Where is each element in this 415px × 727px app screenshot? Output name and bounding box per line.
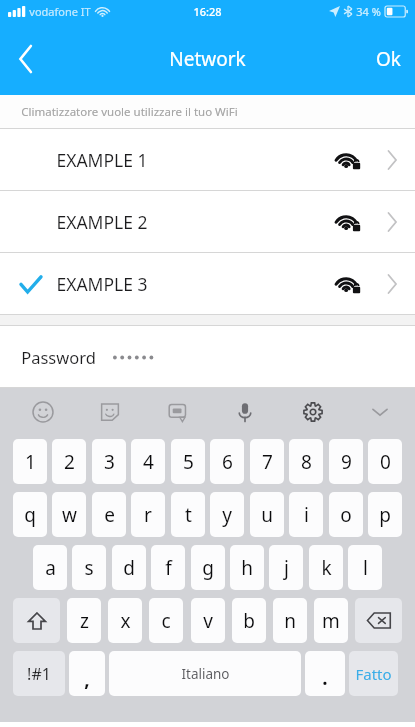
staticText: h xyxy=(241,555,253,581)
button[interactable]: k xyxy=(309,545,343,590)
staticText: e xyxy=(104,502,115,528)
staticText: 7 xyxy=(262,449,273,475)
button[interactable]: , xyxy=(69,651,105,696)
button[interactable]: z xyxy=(67,598,101,643)
button[interactable]: 8 xyxy=(289,439,323,484)
button[interactable]: o xyxy=(329,492,363,537)
button[interactable]: l xyxy=(348,545,382,590)
staticText: z xyxy=(80,608,89,634)
button[interactable]: Back xyxy=(0,22,52,95)
staticText: !#1 xyxy=(27,663,51,685)
button[interactable]: y xyxy=(210,492,244,537)
staticText: k xyxy=(321,555,332,581)
staticText: o xyxy=(340,502,352,528)
staticText: l xyxy=(363,555,368,581)
button[interactable]: Keyboard settings xyxy=(296,395,330,429)
staticText: Italiano xyxy=(181,665,230,683)
button[interactable]: j xyxy=(269,545,303,590)
staticText: 0 xyxy=(380,449,391,475)
staticText: n xyxy=(284,608,296,634)
button[interactable]: x xyxy=(108,598,142,643)
staticText: w xyxy=(62,502,77,528)
button[interactable]: GIF xyxy=(161,395,195,429)
staticText: b xyxy=(243,608,255,634)
staticText: m xyxy=(322,608,340,634)
button[interactable]: 9 xyxy=(329,439,363,484)
staticText: Ok xyxy=(376,46,401,72)
button[interactable]: Voice input xyxy=(228,395,262,429)
button[interactable]: r xyxy=(131,492,165,537)
staticText: q xyxy=(24,502,36,528)
button[interactable]: Hide keyboard xyxy=(363,395,397,429)
button[interactable]: !#1 xyxy=(13,651,65,696)
staticText: 8 xyxy=(301,449,312,475)
staticText: s xyxy=(84,555,94,581)
button[interactable]: 2 xyxy=(52,439,86,484)
button[interactable]: q xyxy=(13,492,47,537)
staticText: EXAMPLE 1 xyxy=(56,148,148,172)
staticText: vodafone IT xyxy=(29,4,91,19)
button[interactable]: Emoji xyxy=(26,395,60,429)
button[interactable]: 3 xyxy=(92,439,126,484)
staticText: j xyxy=(284,555,289,581)
staticText: 1 xyxy=(25,449,36,475)
button[interactable]: EXAMPLE 3 xyxy=(0,253,415,314)
button[interactable]: 7 xyxy=(250,439,284,484)
button[interactable]: 4 xyxy=(131,439,165,484)
staticText: r xyxy=(144,502,152,528)
button[interactable]: Shift xyxy=(13,598,60,643)
button[interactable]: EXAMPLE 2 xyxy=(0,191,415,252)
staticText: 6 xyxy=(222,449,233,475)
staticText: 2 xyxy=(64,449,75,475)
staticText: 4 xyxy=(143,449,154,475)
button[interactable]: g xyxy=(191,545,225,590)
button[interactable]: . xyxy=(305,651,345,696)
staticText: d xyxy=(123,555,135,581)
staticText: a xyxy=(45,555,56,581)
button[interactable]: m xyxy=(314,598,348,643)
button[interactable]: i xyxy=(289,492,323,537)
button[interactable]: a xyxy=(33,545,67,590)
staticText: u xyxy=(261,502,273,528)
button[interactable]: f xyxy=(151,545,185,590)
button[interactable]: Ok xyxy=(376,22,401,95)
staticText: Fatto xyxy=(355,664,392,684)
button[interactable]: Stickers xyxy=(93,395,127,429)
button[interactable]: e xyxy=(92,492,126,537)
button[interactable]: Fatto xyxy=(349,651,398,696)
button[interactable]: p xyxy=(368,492,402,537)
button[interactable]: c xyxy=(149,598,183,643)
staticText: v xyxy=(203,608,213,634)
button[interactable]: n xyxy=(273,598,307,643)
button[interactable]: 0 xyxy=(368,439,402,484)
button[interactable]: 5 xyxy=(171,439,205,484)
staticText: 3 xyxy=(104,449,115,475)
staticText: i xyxy=(304,502,309,528)
button[interactable]: d xyxy=(112,545,146,590)
button[interactable]: Password xyxy=(0,326,415,387)
staticText: x xyxy=(120,608,131,634)
staticText: c xyxy=(161,608,171,634)
staticText: , xyxy=(84,666,90,692)
button[interactable]: Italiano xyxy=(109,651,301,696)
staticText: Password xyxy=(21,346,96,368)
button[interactable]: h xyxy=(230,545,264,590)
button[interactable]: s xyxy=(72,545,106,590)
staticText: 5 xyxy=(183,449,194,475)
button[interactable]: 1 xyxy=(13,439,47,484)
button[interactable]: w xyxy=(52,492,86,537)
button[interactable]: v xyxy=(191,598,225,643)
staticText: 9 xyxy=(341,449,352,475)
staticText: f xyxy=(165,555,172,581)
button[interactable]: 6 xyxy=(210,439,244,484)
button[interactable]: Backspace xyxy=(355,598,402,643)
staticText: 16:28 xyxy=(193,4,222,19)
staticText: . xyxy=(322,665,328,691)
button[interactable]: u xyxy=(250,492,284,537)
staticText: 34 % xyxy=(356,4,381,19)
staticText: y xyxy=(222,502,232,528)
button[interactable]: b xyxy=(232,598,266,643)
button[interactable]: t xyxy=(171,492,205,537)
button[interactable]: EXAMPLE 1 xyxy=(0,129,415,190)
staticText: g xyxy=(202,555,214,581)
